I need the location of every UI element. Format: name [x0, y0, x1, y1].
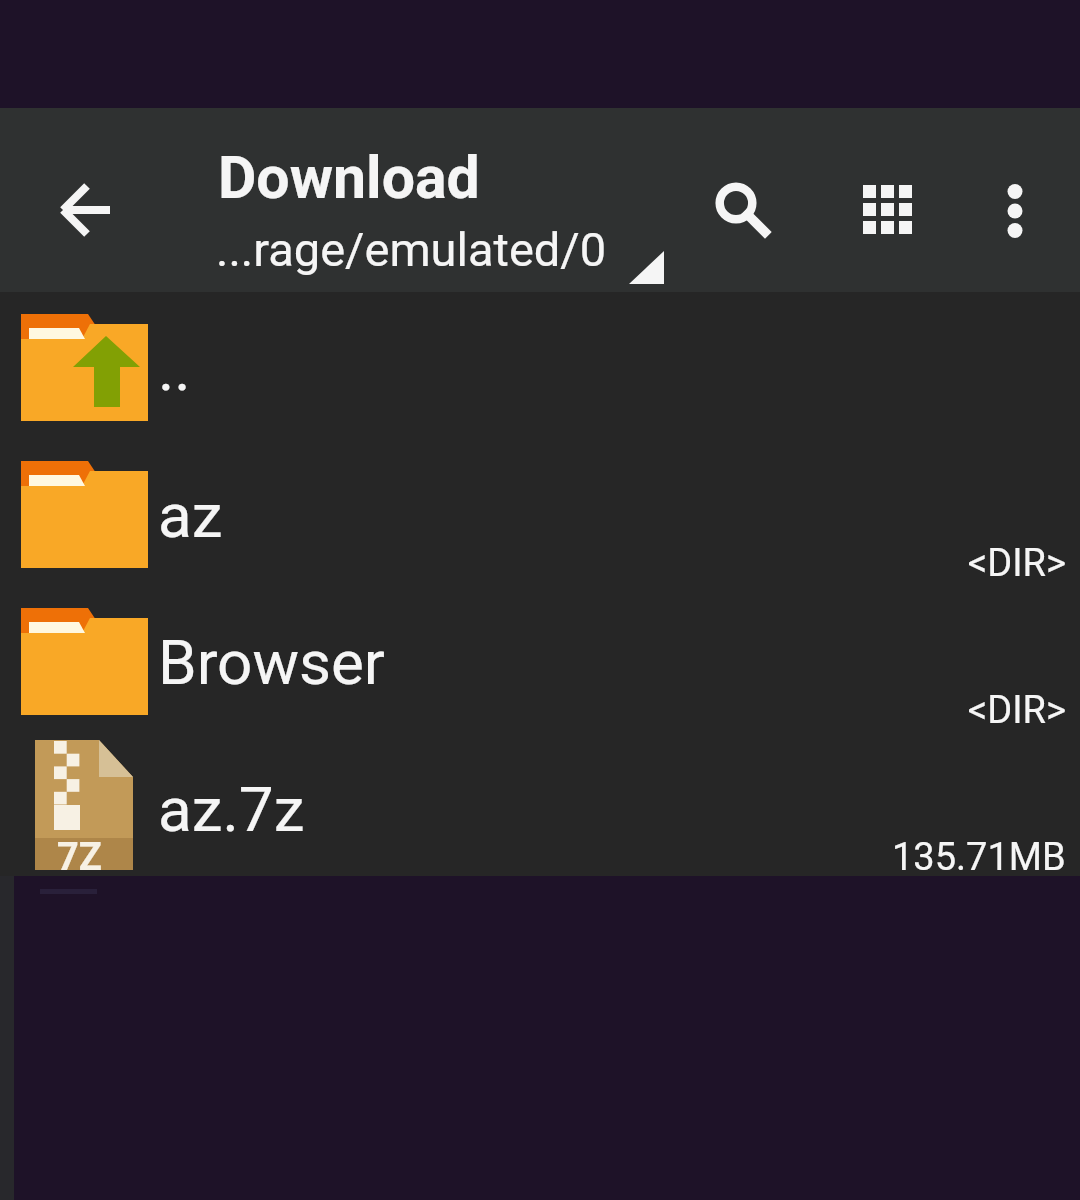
staticText: ...rage/emulated/0 [216, 222, 607, 277]
staticText: 7Z [57, 835, 102, 880]
button[interactable]: Search [690, 154, 782, 246]
button[interactable]: Browser [0, 586, 1080, 733]
staticText: 135.71MB [892, 835, 1066, 880]
staticText: .. [158, 332, 191, 405]
staticText: <DIR> [968, 541, 1066, 586]
button[interactable]: 7Z [0, 733, 1080, 876]
button[interactable]: .. [0, 292, 1080, 439]
staticText: az [158, 479, 223, 552]
button[interactable]: More options [967, 163, 1061, 257]
button[interactable]: Back [38, 162, 134, 258]
button[interactable]: az [0, 439, 1080, 586]
staticText: az.7z [158, 773, 305, 846]
button[interactable]: Change view [840, 162, 935, 257]
staticText: <DIR> [968, 688, 1066, 733]
staticText: Browser [158, 626, 385, 699]
staticText: Download [218, 143, 480, 212]
